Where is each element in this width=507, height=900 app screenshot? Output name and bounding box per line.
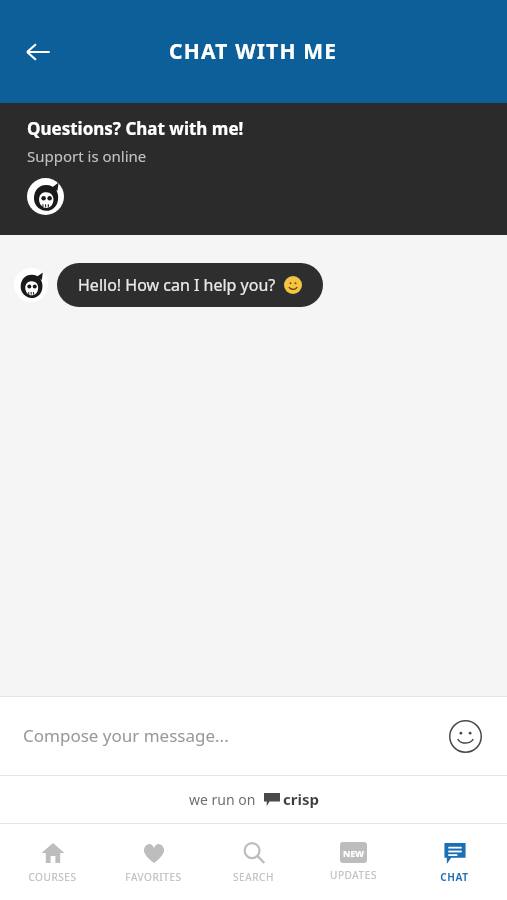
- staticText: CHAT WITH ME: [169, 37, 338, 66]
- staticText: crisp: [283, 789, 319, 809]
- button[interactable]: Compose your message...: [0, 696, 507, 775]
- button[interactable]: Back: [10, 24, 66, 80]
- staticText: Support is online: [27, 146, 147, 166]
- button[interactable]: NEW: [306, 824, 401, 900]
- staticText: FAVORITES: [125, 870, 182, 884]
- staticText: UPDATES: [330, 868, 377, 882]
- button[interactable]: we run on: [189, 789, 319, 809]
- staticText: COURSES: [28, 870, 77, 884]
- button[interactable]: CHAT: [407, 824, 502, 900]
- staticText: SEARCH: [233, 870, 274, 884]
- staticText: we run on: [189, 790, 256, 809]
- button[interactable]: COURSES: [5, 824, 100, 900]
- staticText: CHAT: [440, 870, 469, 884]
- staticText: Compose your message...: [23, 724, 229, 747]
- staticText: NEW: [343, 847, 365, 859]
- button[interactable]: FAVORITES: [106, 824, 201, 900]
- staticText: Hello! How can I help you?: [78, 274, 276, 296]
- button[interactable]: Insert emoji: [443, 714, 487, 758]
- button[interactable]: Hello! How can I help you?: [57, 263, 323, 307]
- staticText: Questions? Chat with me!: [27, 117, 244, 140]
- button[interactable]: SEARCH: [206, 824, 301, 900]
